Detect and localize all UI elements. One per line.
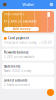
button[interactable]: Statements <box>2 63 54 75</box>
button[interactable]: Profile <box>3 3 7 6</box>
staticText: Add money <box>13 27 30 31</box>
staticText: Rewards balance <box>4 51 29 54</box>
staticText: TOTAL BALANCE <box>4 12 24 16</box>
staticText: Statements <box>4 65 20 68</box>
staticText: Linked accounts <box>4 79 27 82</box>
staticText: March 2024 is ready <box>4 69 31 73</box>
button[interactable]: Card payment <box>2 34 54 47</box>
staticText: 2,400 points available <box>4 55 35 59</box>
staticText: $12,480.55 available <box>4 20 37 23</box>
staticText: 2 banks connected <box>4 83 30 87</box>
button[interactable]: Linked accounts <box>2 77 54 89</box>
staticText: +120.00 <box>39 41 52 44</box>
button[interactable]: New transfer <box>47 89 54 96</box>
button[interactable]: Rewards balance <box>2 49 54 61</box>
staticText: Card payment <box>8 36 29 40</box>
staticText: Processed earlier today <box>4 41 36 44</box>
staticText: Wallet <box>22 2 34 7</box>
button[interactable]: Scan code <box>50 3 53 6</box>
button[interactable]: Add money <box>4 27 39 31</box>
